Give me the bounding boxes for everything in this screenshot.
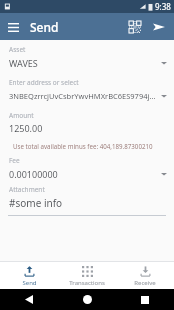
button[interactable]: Home xyxy=(58,289,116,310)
button[interactable]: Send xyxy=(0,263,58,289)
button[interactable]: Transactions xyxy=(58,263,116,289)
button[interactable]: 0.00100000 xyxy=(0,165,174,182)
staticText: Send xyxy=(30,19,59,35)
staticText: Receive xyxy=(134,279,156,287)
staticText: 0.00100000 xyxy=(9,168,157,180)
staticText: 3NBEQzrrcjUvCsbrYwvHMXrBC6ES9794jQi xyxy=(9,91,157,101)
button[interactable]: Menu xyxy=(3,17,23,37)
staticText: Asset xyxy=(9,45,26,54)
staticText: 1250.00 xyxy=(9,122,43,134)
staticText: Attachment xyxy=(9,185,45,194)
button[interactable]: Recent apps xyxy=(116,289,174,310)
button[interactable]: Use total available minus fee: 404,189.8… xyxy=(0,142,174,150)
button[interactable]: #some info xyxy=(0,194,174,212)
staticText: 9:38 xyxy=(155,1,171,12)
button[interactable]: 3NBEQzrrcjUvCsbrYwvHMXrBC6ES9794jQi xyxy=(0,87,174,104)
staticText: Transactions xyxy=(69,279,105,287)
button[interactable]: Receive xyxy=(116,263,174,289)
button[interactable]: Scan QR code xyxy=(124,16,146,38)
button[interactable]: WAVES xyxy=(0,54,174,71)
button[interactable]: Send xyxy=(148,16,170,38)
staticText: Use total available minus fee: 404,189.8… xyxy=(13,142,168,150)
staticText: Send xyxy=(22,279,37,287)
staticText: Fee xyxy=(9,156,20,165)
staticText: #some info xyxy=(9,196,63,210)
button[interactable]: 1250.00 xyxy=(0,120,174,136)
staticText: Enter address or select xyxy=(9,78,79,87)
button[interactable]: Back xyxy=(0,289,58,310)
staticText: WAVES xyxy=(9,57,157,69)
staticText: Amount xyxy=(9,111,34,120)
